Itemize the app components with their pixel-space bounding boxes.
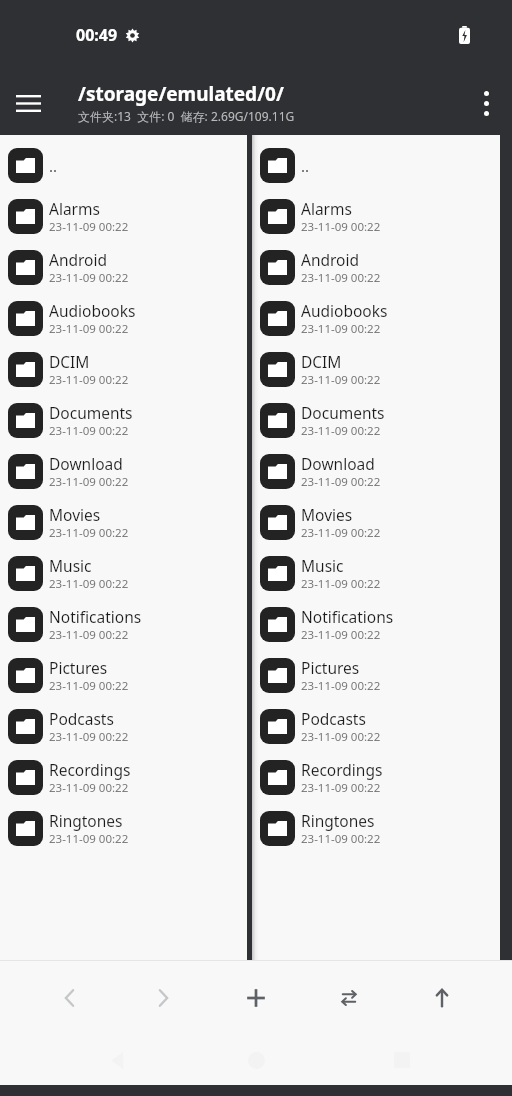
staticText: Movies <box>49 504 101 525</box>
button[interactable]: DCIM <box>0 344 247 395</box>
staticText: Audiobooks <box>301 300 388 321</box>
staticText: 23-11-09 00:22 <box>49 627 129 643</box>
staticText: /storage/emulated/0/ <box>78 81 284 107</box>
button[interactable]: Music <box>252 548 500 599</box>
staticText: 23-11-09 00:22 <box>301 831 381 847</box>
staticText: 23-11-09 00:22 <box>301 525 381 541</box>
button[interactable]: Notifications <box>0 599 247 650</box>
staticText: 23-11-09 00:22 <box>49 678 129 694</box>
staticText: Ringtones <box>49 810 123 831</box>
staticText: Documents <box>49 402 133 423</box>
button[interactable]: Recordings <box>0 752 247 803</box>
staticText: 23-11-09 00:22 <box>49 729 129 745</box>
staticText: 文件夹:13 文件: 0 储存: 2.69G/109.11G <box>78 108 295 124</box>
button[interactable]: Notifications <box>252 599 500 650</box>
staticText: Ringtones <box>301 810 375 831</box>
staticText: 23-11-09 00:22 <box>49 423 129 439</box>
button[interactable]: Ringtones <box>252 803 500 854</box>
staticText: 23-11-09 00:22 <box>301 627 381 643</box>
staticText: DCIM <box>301 351 342 372</box>
staticText: 23-11-09 00:22 <box>301 270 381 286</box>
staticText: 23-11-09 00:22 <box>301 576 381 592</box>
button[interactable]: Movies <box>0 497 247 548</box>
staticText: Notifications <box>49 606 142 627</box>
button[interactable]: Documents <box>0 395 247 446</box>
button[interactable]: Android <box>252 242 500 293</box>
button[interactable]: Add <box>233 980 279 1016</box>
staticText: 23-11-09 00:22 <box>49 270 129 286</box>
staticText: Documents <box>301 402 385 423</box>
button[interactable]: Audiobooks <box>252 293 500 344</box>
staticText: Audiobooks <box>49 300 136 321</box>
staticText: Pictures <box>301 657 360 678</box>
button[interactable]: Pictures <box>252 650 500 701</box>
button[interactable]: Podcasts <box>252 701 500 752</box>
button[interactable]: Open navigation menu <box>0 75 56 131</box>
staticText: 23-11-09 00:22 <box>301 219 381 235</box>
staticText: .. <box>301 156 310 176</box>
staticText: 23-11-09 00:22 <box>49 831 129 847</box>
staticText: Podcasts <box>49 708 114 729</box>
staticText: 23-11-09 00:22 <box>49 321 129 337</box>
button[interactable]: Pictures <box>0 650 247 701</box>
button[interactable]: Alarms <box>0 191 247 242</box>
staticText: Download <box>301 453 375 474</box>
button[interactable]: .. <box>0 140 247 191</box>
staticText: 23-11-09 00:22 <box>301 474 381 490</box>
staticText: 23-11-09 00:22 <box>49 219 129 235</box>
staticText: 00:49 <box>76 24 118 46</box>
button[interactable]: .. <box>252 140 500 191</box>
staticText: 23-11-09 00:22 <box>301 780 381 796</box>
staticText: 23-11-09 00:22 <box>49 474 129 490</box>
staticText: 23-11-09 00:22 <box>301 423 381 439</box>
staticText: 23-11-09 00:22 <box>49 780 129 796</box>
staticText: Music <box>49 555 92 576</box>
staticText: Android <box>301 249 360 270</box>
button[interactable]: More options <box>460 77 512 129</box>
staticText: 23-11-09 00:22 <box>301 729 381 745</box>
button[interactable]: Movies <box>252 497 500 548</box>
button[interactable]: Swap panes <box>326 980 372 1016</box>
staticText: 23-11-09 00:22 <box>301 678 381 694</box>
staticText: 23-11-09 00:22 <box>301 321 381 337</box>
button[interactable]: Ringtones <box>0 803 247 854</box>
staticText: 23-11-09 00:22 <box>49 576 129 592</box>
button[interactable]: Download <box>0 446 247 497</box>
button[interactable]: DCIM <box>252 344 500 395</box>
button[interactable]: Back <box>47 980 93 1016</box>
staticText: DCIM <box>49 351 90 372</box>
staticText: Notifications <box>301 606 394 627</box>
button[interactable]: Documents <box>252 395 500 446</box>
button[interactable]: Go up <box>419 980 465 1016</box>
staticText: Music <box>301 555 344 576</box>
button[interactable]: Forward <box>140 980 186 1016</box>
staticText: Alarms <box>301 198 352 219</box>
staticText: Pictures <box>49 657 108 678</box>
staticText: 23-11-09 00:22 <box>49 372 129 388</box>
staticText: .. <box>49 156 58 176</box>
staticText: Recordings <box>49 759 131 780</box>
staticText: 23-11-09 00:22 <box>49 525 129 541</box>
button[interactable]: Music <box>0 548 247 599</box>
staticText: Podcasts <box>301 708 366 729</box>
button[interactable]: Recordings <box>252 752 500 803</box>
staticText: Alarms <box>49 198 100 219</box>
button[interactable]: Android <box>0 242 247 293</box>
staticText: Recordings <box>301 759 383 780</box>
staticText: Download <box>49 453 123 474</box>
button[interactable]: Download <box>252 446 500 497</box>
button[interactable]: Audiobooks <box>0 293 247 344</box>
staticText: 23-11-09 00:22 <box>301 372 381 388</box>
button[interactable]: Podcasts <box>0 701 247 752</box>
staticText: Movies <box>301 504 353 525</box>
button[interactable]: Alarms <box>252 191 500 242</box>
staticText: Android <box>49 249 108 270</box>
